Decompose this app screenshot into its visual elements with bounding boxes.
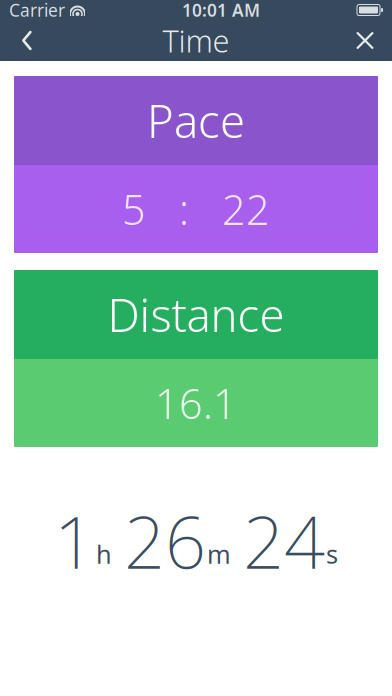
button[interactable]: Pace — [0, 76, 392, 253]
button[interactable]: Close — [338, 20, 392, 61]
staticText: 16.1 — [155, 376, 237, 430]
button[interactable]: Back — [0, 20, 54, 61]
staticText: 10:01 AM — [182, 0, 260, 21]
staticText: Carrier — [9, 0, 65, 21]
staticText: 24 — [243, 493, 325, 589]
staticText: 5 : 22 — [122, 182, 270, 236]
staticText: Pace — [147, 90, 245, 151]
staticText: h — [96, 537, 112, 571]
staticText: 26 — [124, 493, 206, 589]
staticText: s — [326, 537, 338, 571]
staticText: Time — [162, 20, 229, 61]
staticText: 1 — [54, 493, 95, 589]
staticText: Distance — [107, 284, 284, 345]
staticText: m — [207, 537, 231, 571]
button[interactable]: Distance — [0, 270, 392, 447]
